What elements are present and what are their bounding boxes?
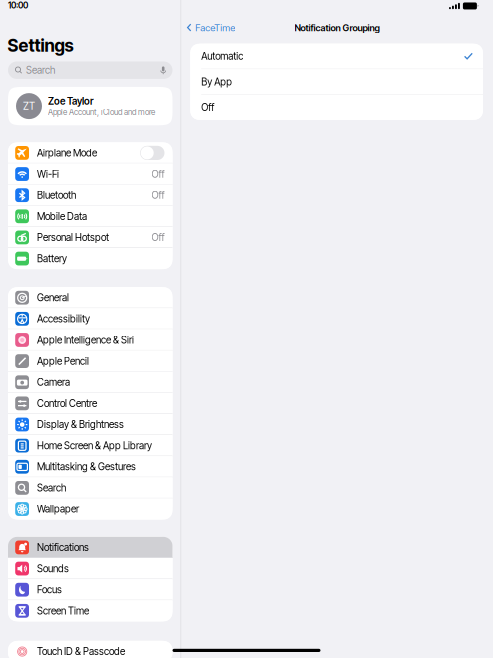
staticText: 10:00 xyxy=(8,0,28,11)
button[interactable]: Notifications xyxy=(8,537,172,558)
staticText: Settings xyxy=(7,35,73,56)
button[interactable]: FaceTime xyxy=(181,17,241,39)
button[interactable]: Accessibility xyxy=(8,308,172,329)
button[interactable]: Apple Intelligence & Siri xyxy=(8,329,172,350)
staticText: Wi-Fi xyxy=(37,168,59,180)
staticText: Multitasking & Gestures xyxy=(37,461,136,473)
staticText: Control Centre xyxy=(37,397,97,409)
button[interactable]: Control Centre xyxy=(8,393,172,414)
staticText: Personal Hotspot xyxy=(37,231,109,243)
staticText: Notification Grouping xyxy=(295,22,380,33)
button[interactable]: Camera xyxy=(8,372,172,393)
staticText: Mobile Data xyxy=(37,210,87,222)
button[interactable]: Wallpaper xyxy=(8,498,172,519)
button[interactable]: By App xyxy=(190,69,483,94)
button[interactable]: Apple Pencil xyxy=(8,350,172,372)
button[interactable]: Automatic xyxy=(190,44,483,69)
button[interactable]: Focus xyxy=(8,579,172,600)
staticText: Off xyxy=(151,231,164,243)
staticText: Off xyxy=(151,189,164,201)
button[interactable]: Bluetooth xyxy=(8,185,172,206)
staticText: Search xyxy=(26,64,55,76)
staticText: General xyxy=(37,292,69,304)
button[interactable]: Screen Time xyxy=(8,600,172,621)
staticText: Automatic xyxy=(201,50,243,62)
staticText: Sounds xyxy=(37,563,69,574)
button[interactable]: General xyxy=(8,287,172,308)
staticText: Apple Pencil xyxy=(37,355,89,367)
staticText: Accessibility xyxy=(37,313,90,325)
staticText: ZT xyxy=(23,100,35,112)
button[interactable]: Personal Hotspot xyxy=(8,227,172,248)
staticText: Camera xyxy=(37,376,70,388)
staticText: Touch ID & Passcode xyxy=(37,645,125,657)
staticText: Notifications xyxy=(37,541,89,553)
staticText: Airplane Mode xyxy=(37,147,97,159)
staticText: Focus xyxy=(37,584,62,596)
staticText: Search xyxy=(37,482,66,494)
button[interactable]: Search xyxy=(8,477,172,498)
button[interactable]: Battery xyxy=(8,248,172,269)
button[interactable]: Airplane Mode xyxy=(8,142,172,163)
staticText: Off xyxy=(201,101,214,113)
button[interactable]: Sounds xyxy=(8,558,172,579)
button[interactable]: Touch ID & Passcode xyxy=(8,641,172,658)
staticText: Battery xyxy=(37,253,67,264)
staticText: Bluetooth xyxy=(37,189,76,201)
staticText: Apple Account, iCloud and more xyxy=(48,107,155,117)
staticText: Apple Intelligence & Siri xyxy=(37,334,134,346)
button[interactable]: ZT xyxy=(8,87,172,125)
staticText: Display & Brightness xyxy=(37,418,124,430)
staticText: By App xyxy=(201,76,232,88)
staticText: Wallpaper xyxy=(37,503,79,515)
button[interactable]: Off xyxy=(190,95,483,120)
staticText: Zoe Taylor xyxy=(48,95,94,107)
button[interactable]: Mobile Data xyxy=(8,206,172,227)
staticText: Home Screen & App Library xyxy=(37,440,152,451)
button[interactable]: Display & Brightness xyxy=(8,414,172,435)
button[interactable]: Wi-Fi xyxy=(8,163,172,185)
button[interactable]: Home Screen & App Library xyxy=(8,435,172,456)
staticText: FaceTime xyxy=(195,22,235,34)
staticText: Off xyxy=(151,168,164,180)
staticText: Screen Time xyxy=(37,605,89,617)
button[interactable]: Multitasking & Gestures xyxy=(8,456,172,477)
